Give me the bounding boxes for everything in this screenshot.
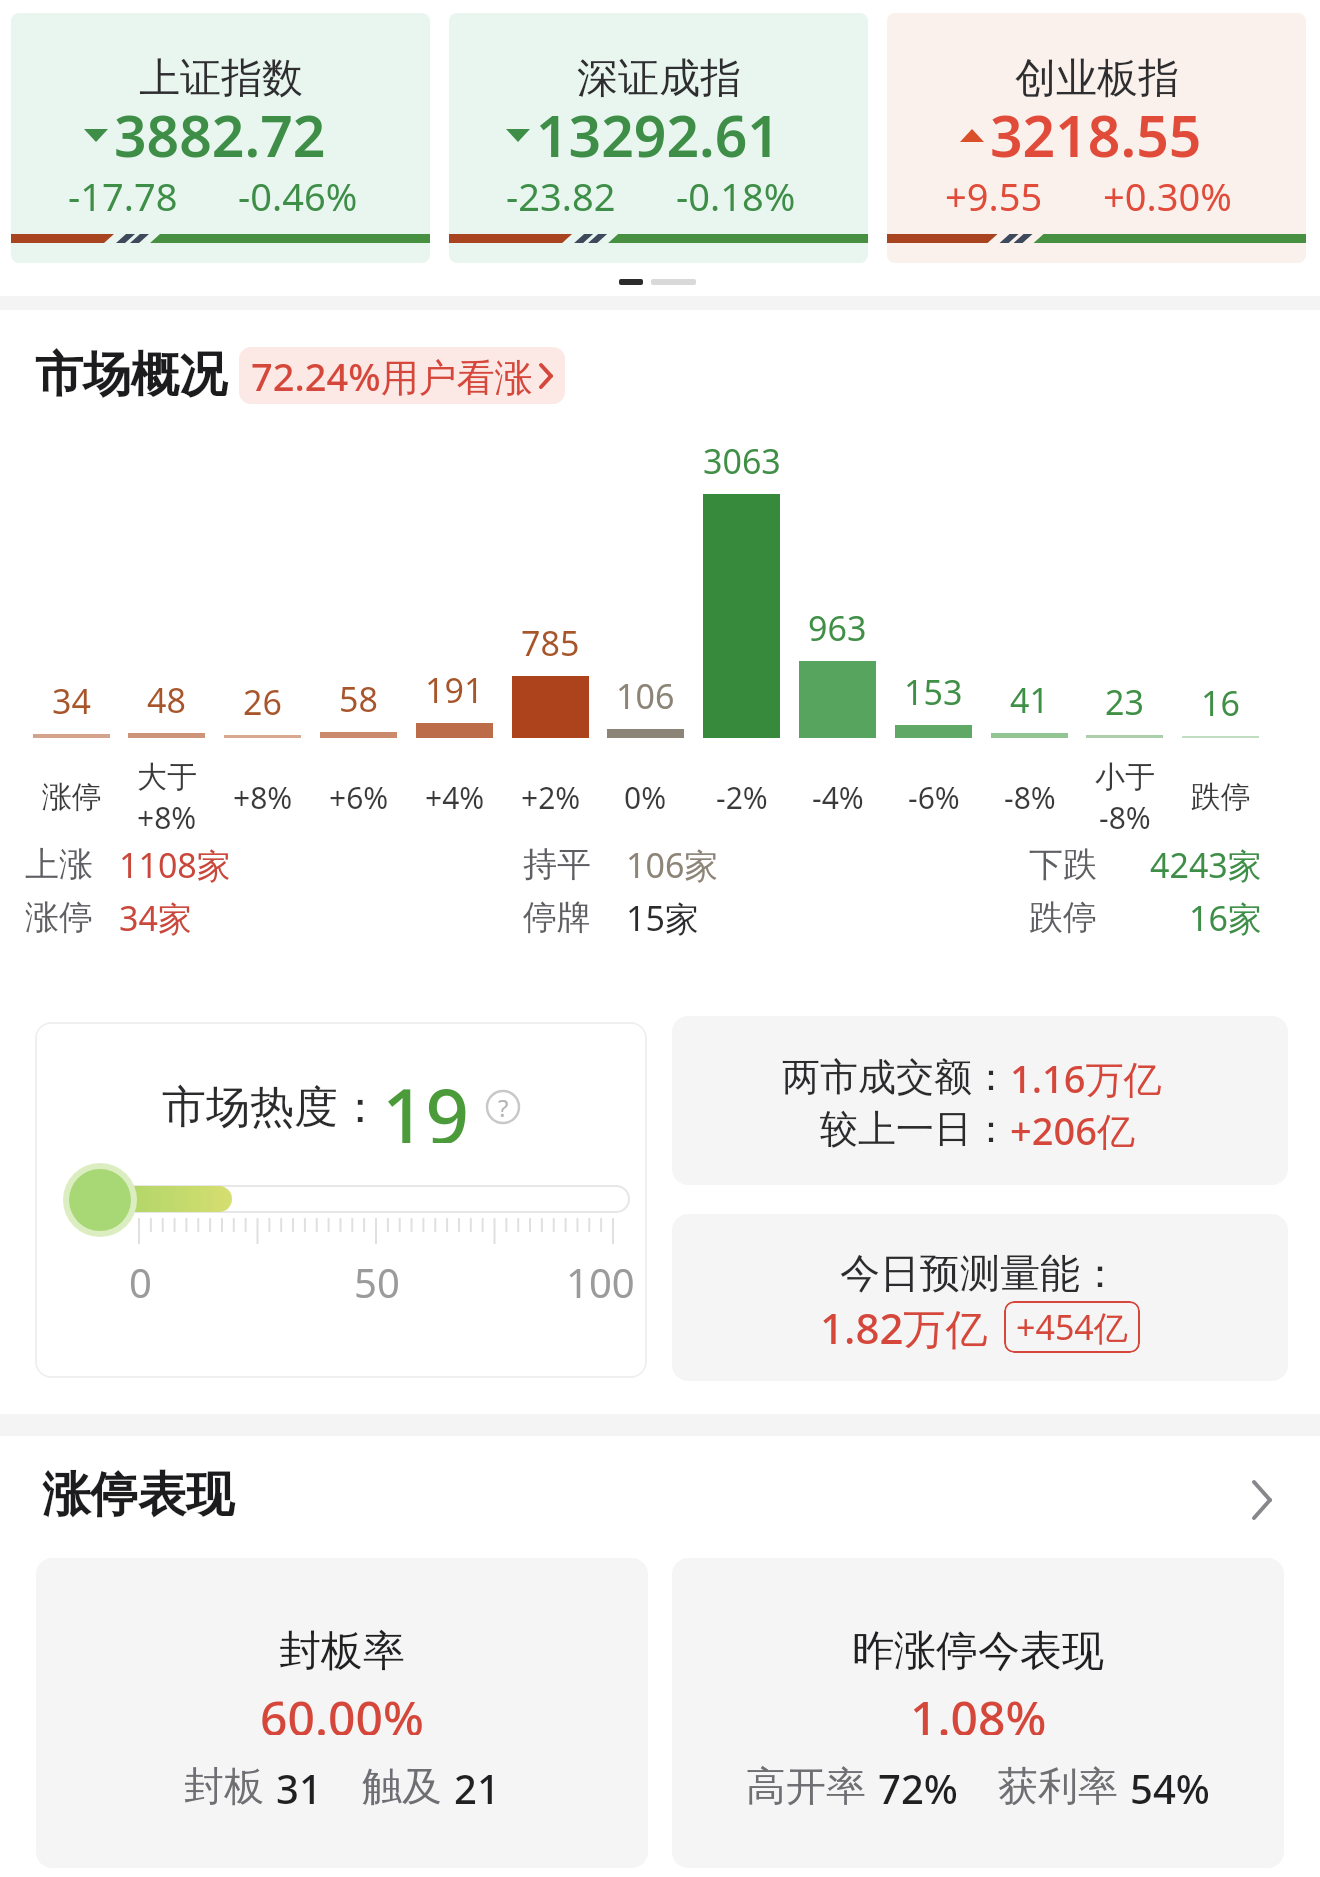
button[interactable]: 今日预测量能：: [672, 1214, 1288, 1381]
staticText: -17.78: [68, 170, 178, 220]
staticText: ?: [498, 1091, 509, 1124]
staticText: 13292.61: [536, 96, 780, 174]
staticText: 0: [129, 1255, 152, 1305]
staticText: 963: [808, 605, 867, 651]
staticText: -8%: [1004, 777, 1056, 818]
staticText: +8%: [137, 797, 197, 837]
staticText: 3218.55: [990, 96, 1202, 174]
staticText: 两市成交额：: [782, 1053, 1010, 1101]
staticText: 高开率: [746, 1761, 866, 1811]
staticText: 60.00%: [260, 1685, 424, 1735]
staticText: 106: [616, 673, 675, 719]
staticText: 深证成指: [577, 53, 741, 103]
staticText: 涨停: [25, 896, 93, 939]
staticText: 23: [1105, 679, 1144, 725]
staticText: +454亿: [1016, 1304, 1128, 1350]
staticText: -4%: [812, 777, 864, 818]
staticText: 昨涨停今表现: [852, 1625, 1104, 1675]
button[interactable]: 昨涨停今表现: [672, 1558, 1284, 1868]
staticText: 市场热度：: [162, 1080, 382, 1135]
staticText: 封板: [184, 1761, 264, 1811]
staticText: 涨停表现: [42, 1465, 234, 1525]
staticText: 创业板指: [1015, 53, 1179, 103]
staticText: +8%: [233, 777, 293, 818]
staticText: 19: [382, 1063, 469, 1143]
staticText: +2%: [521, 777, 581, 818]
button[interactable]: 封板率: [36, 1558, 648, 1868]
staticText: 31: [276, 1761, 322, 1811]
staticText: 16家: [1189, 895, 1262, 939]
staticText: +9.55: [945, 170, 1043, 220]
staticText: 下跌: [1029, 843, 1097, 886]
staticText: 获利率: [998, 1761, 1118, 1811]
button[interactable]: 创业板指: [887, 13, 1306, 263]
staticText: 3882.72: [114, 96, 326, 174]
staticText: 4243家: [1150, 842, 1262, 886]
staticText: 21: [454, 1761, 500, 1811]
staticText: 上证指数: [139, 53, 303, 103]
staticText: 停牌: [523, 896, 591, 939]
staticText: 持平: [523, 843, 591, 886]
staticText: 1.08%: [910, 1685, 1047, 1735]
staticText: -0.18%: [676, 170, 796, 220]
staticText: 191: [425, 667, 484, 713]
staticText: +206亿: [1010, 1104, 1135, 1154]
staticText: 上涨: [25, 843, 93, 886]
staticText: 1108家: [119, 842, 231, 886]
staticText: 跌停: [1191, 778, 1251, 816]
staticText: +6%: [329, 777, 389, 818]
staticText: 106家: [626, 842, 719, 886]
staticText: 小于: [1095, 758, 1155, 796]
staticText: 触及: [362, 1761, 442, 1811]
button[interactable]: 市场热度：: [35, 1022, 647, 1378]
staticText: 100: [566, 1255, 635, 1305]
staticText: -6%: [908, 777, 960, 818]
button[interactable]: 两市成交额：: [672, 1016, 1288, 1185]
staticText: 58: [339, 676, 378, 722]
staticText: 跌停: [1029, 896, 1097, 939]
button[interactable]: 上证指数: [11, 13, 430, 263]
staticText: 48: [147, 677, 186, 723]
staticText: 41: [1010, 677, 1049, 723]
staticText: 34: [52, 678, 91, 724]
staticText: 0%: [624, 777, 667, 818]
staticText: 72.24%用户看涨: [251, 350, 533, 402]
staticText: -2%: [716, 777, 768, 818]
staticText: 大于: [137, 758, 197, 796]
staticText: 封板率: [279, 1625, 405, 1675]
staticText: 较上一日：: [820, 1105, 1010, 1153]
staticText: 54%: [1130, 1761, 1210, 1811]
staticText: 72%: [878, 1761, 958, 1811]
staticText: 785: [521, 620, 580, 666]
button[interactable]: 72.24%用户看涨: [239, 347, 565, 404]
staticText: 1.82万亿: [820, 1299, 988, 1355]
staticText: 1.16万亿: [1010, 1052, 1162, 1102]
staticText: 涨停: [42, 778, 102, 816]
staticText: -8%: [1099, 797, 1151, 837]
staticText: 50: [354, 1255, 400, 1305]
staticText: 市场概况: [35, 345, 227, 405]
staticText: +0.30%: [1103, 170, 1232, 220]
button[interactable]: 深证成指: [449, 13, 868, 263]
staticText: 16: [1201, 680, 1240, 726]
staticText: 3063: [703, 438, 781, 484]
staticText: 34家: [119, 895, 192, 939]
staticText: 26: [243, 679, 282, 725]
staticText: 今日预测量能：: [840, 1248, 1120, 1298]
staticText: +4%: [425, 777, 485, 818]
staticText: 153: [904, 669, 963, 715]
staticText: -0.46%: [238, 170, 358, 220]
staticText: -23.82: [506, 170, 616, 220]
staticText: 15家: [626, 895, 699, 939]
